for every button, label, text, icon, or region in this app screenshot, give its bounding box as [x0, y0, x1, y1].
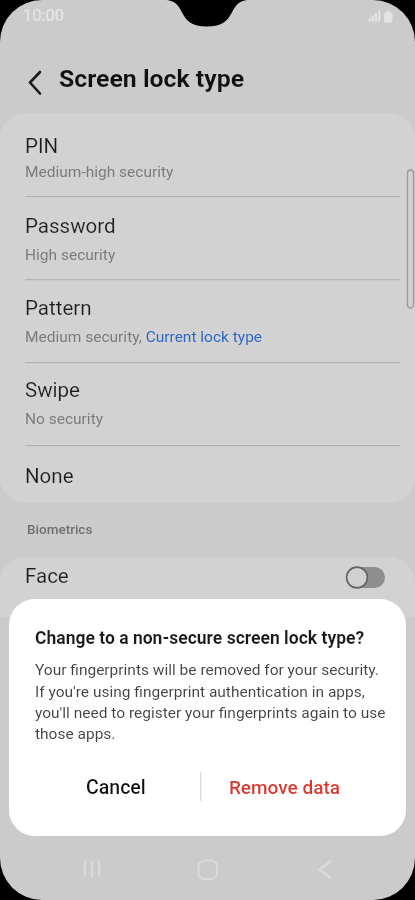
button[interactable] — [0, 362, 415, 445]
staticText: Password — [25, 214, 116, 238]
button[interactable] — [0, 279, 415, 362]
staticText: Screen lock type — [59, 64, 245, 93]
staticText: No security — [25, 410, 104, 428]
button[interactable]: Remove data — [215, 766, 355, 808]
staticText: PIN — [25, 134, 59, 158]
staticText: Medium-high security — [25, 163, 174, 181]
button[interactable] — [72, 850, 114, 892]
button[interactable] — [0, 196, 415, 279]
staticText: Biometrics — [27, 521, 93, 537]
staticText: 10:00 — [23, 6, 65, 25]
staticText: High security — [25, 246, 116, 264]
button[interactable]: Cancel — [46, 766, 186, 808]
staticText: Your fingerprints will be removed for yo… — [35, 661, 386, 743]
button[interactable] — [14, 60, 58, 104]
button[interactable] — [0, 557, 415, 600]
staticText: None — [25, 464, 74, 488]
staticText: Pattern — [25, 296, 92, 320]
staticText: Cancel — [86, 776, 146, 799]
button[interactable] — [0, 445, 415, 503]
staticText: Face — [25, 564, 69, 588]
staticText: Medium security, Current lock type — [25, 328, 263, 346]
button[interactable] — [186, 850, 228, 892]
staticText: Change to a non-secure screen lock type? — [35, 628, 365, 649]
button[interactable] — [0, 113, 415, 196]
staticText: Swipe — [25, 378, 80, 402]
button[interactable] — [340, 560, 392, 596]
staticText: Remove data — [229, 776, 341, 798]
